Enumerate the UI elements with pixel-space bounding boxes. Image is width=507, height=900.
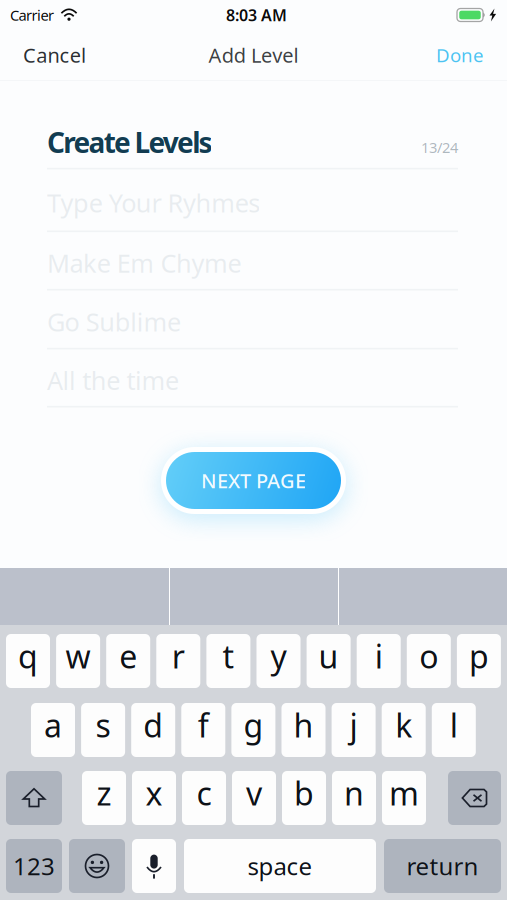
staticText: space xyxy=(247,850,312,882)
button[interactable]: j xyxy=(332,703,376,757)
button[interactable]: t xyxy=(206,634,250,688)
staticText: return xyxy=(406,850,478,882)
staticText: m xyxy=(389,772,419,814)
staticText: Carrier xyxy=(10,5,54,25)
staticText: w xyxy=(66,635,91,677)
button[interactable]: m xyxy=(382,771,426,825)
staticText: z xyxy=(96,772,111,814)
staticText: NEXT PAGE xyxy=(201,467,306,494)
button[interactable]: q xyxy=(6,634,50,688)
staticText: i xyxy=(375,635,383,677)
button[interactable]: u xyxy=(307,634,351,688)
button[interactable]: o xyxy=(407,634,451,688)
button[interactable]: e xyxy=(106,634,150,688)
button[interactable]: x xyxy=(132,771,176,825)
button[interactable]: Cancel xyxy=(23,30,123,80)
button[interactable]: z xyxy=(82,771,126,825)
button[interactable]: y xyxy=(256,634,300,688)
button[interactable]: i xyxy=(357,634,401,688)
staticText: Cancel xyxy=(23,42,86,68)
staticText: Done xyxy=(436,43,484,67)
staticText: d xyxy=(143,704,163,746)
button[interactable]: d xyxy=(131,703,175,757)
button[interactable]: g xyxy=(231,703,275,757)
button[interactable]: n xyxy=(332,771,376,825)
button[interactable]: s xyxy=(81,703,125,757)
staticText: e xyxy=(119,635,137,677)
button[interactable]: p xyxy=(457,634,501,688)
button[interactable]: c xyxy=(182,771,226,825)
staticText: g xyxy=(243,704,263,746)
staticText: h xyxy=(293,704,313,746)
staticText: 123 xyxy=(13,850,55,882)
staticText: n xyxy=(344,772,364,814)
button[interactable]: Emoji xyxy=(69,839,125,893)
button[interactable]: Dictate xyxy=(132,839,176,893)
staticText: Go Sublime xyxy=(47,305,181,338)
staticText: x xyxy=(145,772,162,814)
staticText: 8:03 AM xyxy=(226,4,287,26)
staticText: 13/24 xyxy=(421,137,458,157)
staticText: f xyxy=(198,704,209,746)
staticText: u xyxy=(319,635,339,677)
staticText: p xyxy=(469,635,489,677)
staticText: Add Level xyxy=(209,42,298,68)
button[interactable]: f xyxy=(181,703,225,757)
button[interactable]: Shift xyxy=(6,771,62,825)
button[interactable]: w xyxy=(56,634,100,688)
staticText: t xyxy=(222,635,234,677)
button[interactable]: space xyxy=(184,839,376,893)
button[interactable]: l xyxy=(432,703,476,757)
staticText: r xyxy=(172,635,185,677)
staticText: a xyxy=(44,704,62,746)
button[interactable]: v xyxy=(232,771,276,825)
button[interactable]: 123 xyxy=(6,839,62,893)
staticText: j xyxy=(350,704,358,746)
button[interactable]: h xyxy=(281,703,325,757)
staticText: y xyxy=(270,635,286,677)
staticText: Type Your Ryhmes xyxy=(47,186,260,219)
button[interactable]: r xyxy=(156,634,200,688)
staticText: s xyxy=(96,704,111,746)
staticText: o xyxy=(419,635,438,677)
staticText: k xyxy=(395,704,412,746)
button[interactable]: NEXT PAGE xyxy=(161,447,346,514)
button[interactable]: b xyxy=(282,771,326,825)
staticText: All the time xyxy=(47,363,179,397)
button[interactable]: Done xyxy=(394,30,484,80)
button[interactable]: Delete xyxy=(448,771,501,825)
staticText: c xyxy=(196,772,211,814)
staticText: Create Levels xyxy=(47,123,212,161)
button[interactable]: a xyxy=(31,703,75,757)
button[interactable]: k xyxy=(382,703,426,757)
staticText: l xyxy=(450,704,458,746)
staticText: Make Em Chyme xyxy=(47,246,242,280)
staticText: b xyxy=(294,772,314,814)
button[interactable]: return xyxy=(384,839,501,893)
staticText: v xyxy=(246,772,262,814)
staticText: q xyxy=(18,635,38,677)
